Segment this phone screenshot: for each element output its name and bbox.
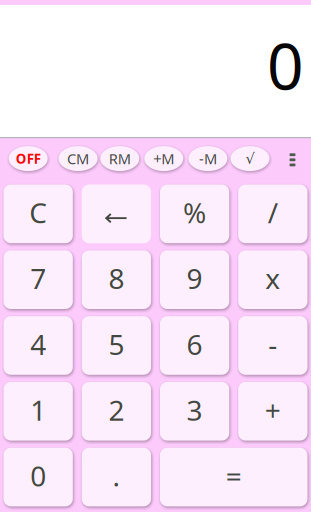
staticText: 8: [108, 260, 124, 297]
staticText: x: [265, 260, 280, 297]
staticText: %: [183, 194, 206, 231]
staticText: 5: [108, 325, 124, 363]
button[interactable]: 4: [3, 316, 73, 375]
staticText: CM: [67, 149, 89, 168]
staticText: √: [245, 150, 254, 167]
staticText: 0: [30, 457, 46, 494]
button[interactable]: +M: [144, 146, 183, 171]
button[interactable]: %: [160, 184, 229, 243]
button[interactable]: Menu: [277, 141, 307, 179]
button[interactable]: 1: [3, 382, 73, 441]
staticText: OFF: [16, 150, 41, 167]
button[interactable]: OFF: [9, 146, 48, 171]
staticText: 6: [187, 325, 203, 363]
staticText: /: [268, 194, 278, 231]
staticText: +M: [153, 149, 174, 168]
staticText: +: [265, 391, 281, 428]
staticText: -: [268, 325, 277, 363]
button[interactable]: 6: [160, 316, 229, 375]
button[interactable]: Backspace: [82, 184, 151, 243]
button[interactable]: √: [230, 146, 269, 171]
button[interactable]: 5: [82, 316, 151, 375]
button[interactable]: 9: [160, 250, 229, 309]
button[interactable]: -M: [188, 146, 227, 171]
button[interactable]: -: [238, 316, 307, 375]
button[interactable]: C: [3, 184, 73, 243]
staticText: RM: [109, 149, 131, 168]
staticText: 9: [187, 260, 203, 297]
staticText: =: [226, 457, 242, 494]
staticText: 0: [267, 22, 304, 107]
staticText: C: [29, 194, 47, 231]
button[interactable]: CM: [59, 146, 98, 171]
staticText: .: [112, 457, 120, 494]
button[interactable]: x: [238, 250, 307, 309]
staticText: 1: [30, 391, 46, 428]
button[interactable]: +: [238, 382, 307, 441]
staticText: -M: [199, 149, 217, 168]
staticText: 2: [108, 391, 124, 428]
button[interactable]: =: [160, 448, 308, 506]
button[interactable]: 2: [82, 382, 151, 441]
button[interactable]: 0: [3, 448, 73, 506]
button[interactable]: /: [238, 184, 307, 243]
button[interactable]: RM: [100, 146, 139, 171]
button[interactable]: 3: [160, 382, 229, 441]
staticText: 4: [30, 325, 46, 363]
button[interactable]: .: [82, 448, 151, 506]
staticText: 3: [187, 391, 203, 428]
button[interactable]: 8: [82, 250, 151, 309]
button[interactable]: 7: [3, 250, 73, 309]
staticText: 7: [30, 260, 46, 297]
